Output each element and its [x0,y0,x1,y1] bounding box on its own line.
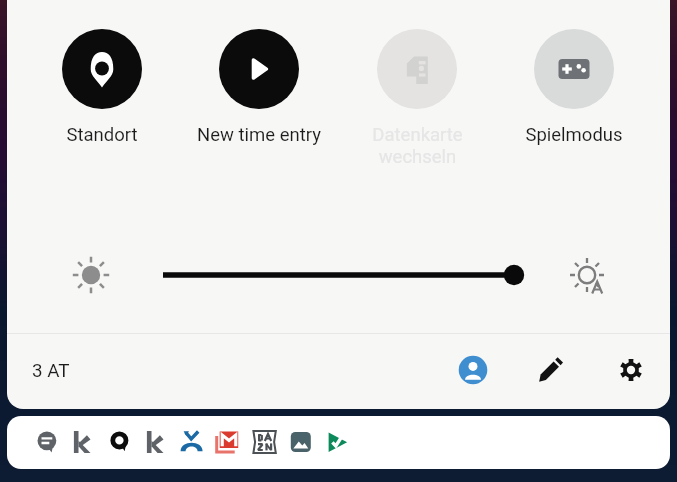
button[interactable]: Standort [27,29,177,146]
button[interactable]: New time entry [184,29,334,146]
staticText: Spielmodus [525,124,623,146]
button[interactable]: Settings [613,352,649,388]
button[interactable]: Datenkarte wechseln [342,29,492,168]
button[interactable]: Account [453,350,493,390]
staticText: New time entry [197,124,321,146]
button[interactable]: Edit [533,352,569,388]
staticText: Standort [66,124,138,146]
staticText: 3 AT [32,360,70,382]
button[interactable]: Spielmodus [499,29,649,146]
staticText: Datenkarte wechseln [372,124,463,168]
button[interactable]: Notifications [7,416,670,469]
button[interactable]: Brightness [7,240,670,312]
